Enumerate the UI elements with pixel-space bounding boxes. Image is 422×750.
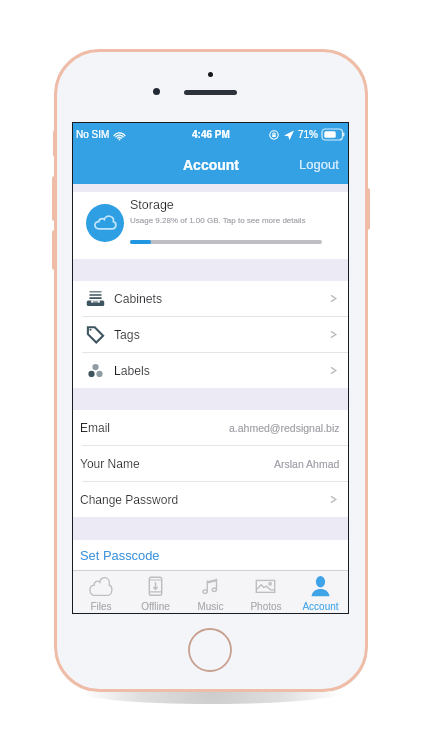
staticText: Change Password [80,493,179,506]
button[interactable]: Account [293,571,348,613]
button[interactable]: Change Password [73,482,348,517]
button[interactable]: Labels [73,353,348,388]
button[interactable]: Music [183,571,238,613]
button[interactable]: Cabinets [73,281,348,316]
button[interactable]: Photos [238,571,293,613]
staticText: Photos [250,601,282,612]
staticText: 71% [298,129,319,140]
button[interactable]: Offline [128,571,183,613]
staticText: Offline [141,601,170,612]
staticText: a.ahmed@redsignal.biz [229,422,340,434]
staticText: No SIM [76,129,110,140]
staticText: Files [90,601,112,612]
staticText: Cabinets [114,292,163,306]
staticText: Music [197,601,224,612]
button[interactable]: Set Passcode [73,540,348,570]
button[interactable]: Email [73,410,348,445]
button[interactable]: Your Name [73,446,348,481]
staticText: Storage [130,198,174,212]
button[interactable]: Logout [289,151,348,178]
staticText: Logout [299,157,339,172]
button[interactable]: Account [175,153,247,177]
staticText: Account [183,157,239,173]
staticText: 4:46 PM [192,129,230,140]
staticText: Account [302,601,339,612]
button[interactable]: Files [73,571,128,613]
staticText: Set Passcode [80,548,160,562]
staticText: Arslan Ahmad [274,458,340,470]
staticText: Labels [114,364,150,378]
staticText: Tags [114,328,140,342]
button[interactable]: Storage [73,192,348,259]
button[interactable]: Tags [73,317,348,352]
staticText: Your Name [80,457,140,470]
staticText: Email [80,421,111,434]
staticText: Usage 9.28% of 1.00 GB. Tap to see more … [130,216,306,225]
